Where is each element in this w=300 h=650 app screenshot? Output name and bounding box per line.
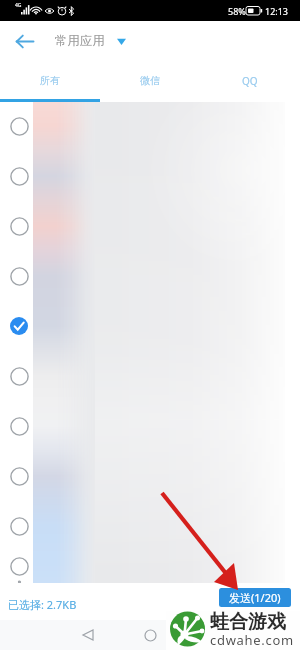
button[interactable]: Recents <box>198 621 226 649</box>
staticText: QQ <box>242 74 258 88</box>
button[interactable]: QQ <box>200 61 300 102</box>
button[interactable] <box>0 551 300 582</box>
staticText: cdwahe.com <box>210 631 294 646</box>
staticText: 已选择: 2.7KB <box>8 597 77 612</box>
button[interactable] <box>0 201 300 251</box>
button[interactable] <box>0 501 300 551</box>
button[interactable] <box>0 301 300 351</box>
button[interactable]: 常用应用 <box>55 33 126 49</box>
staticText: 发送(1/20) <box>229 590 281 605</box>
staticText: 微信 <box>140 74 160 87</box>
button[interactable]: Back <box>8 24 42 58</box>
staticText: 12:13 <box>265 5 289 17</box>
button[interactable] <box>0 401 300 451</box>
staticText: 所有 <box>40 74 60 87</box>
button[interactable]: 发送(1/20) <box>219 588 291 607</box>
staticText: 4G <box>15 2 22 9</box>
button[interactable] <box>0 101 300 151</box>
button[interactable]: 微信 <box>100 61 200 102</box>
button[interactable] <box>0 251 300 301</box>
button[interactable] <box>0 351 300 401</box>
button[interactable] <box>0 151 300 201</box>
staticText: 58% <box>228 5 246 17</box>
staticText: 常用应用 <box>55 33 105 49</box>
button[interactable]: Home <box>136 621 164 649</box>
button[interactable] <box>0 451 300 501</box>
button[interactable]: 所有 <box>0 61 100 102</box>
staticText: 蛙合游戏 <box>210 610 286 634</box>
button[interactable]: Back <box>74 621 102 649</box>
